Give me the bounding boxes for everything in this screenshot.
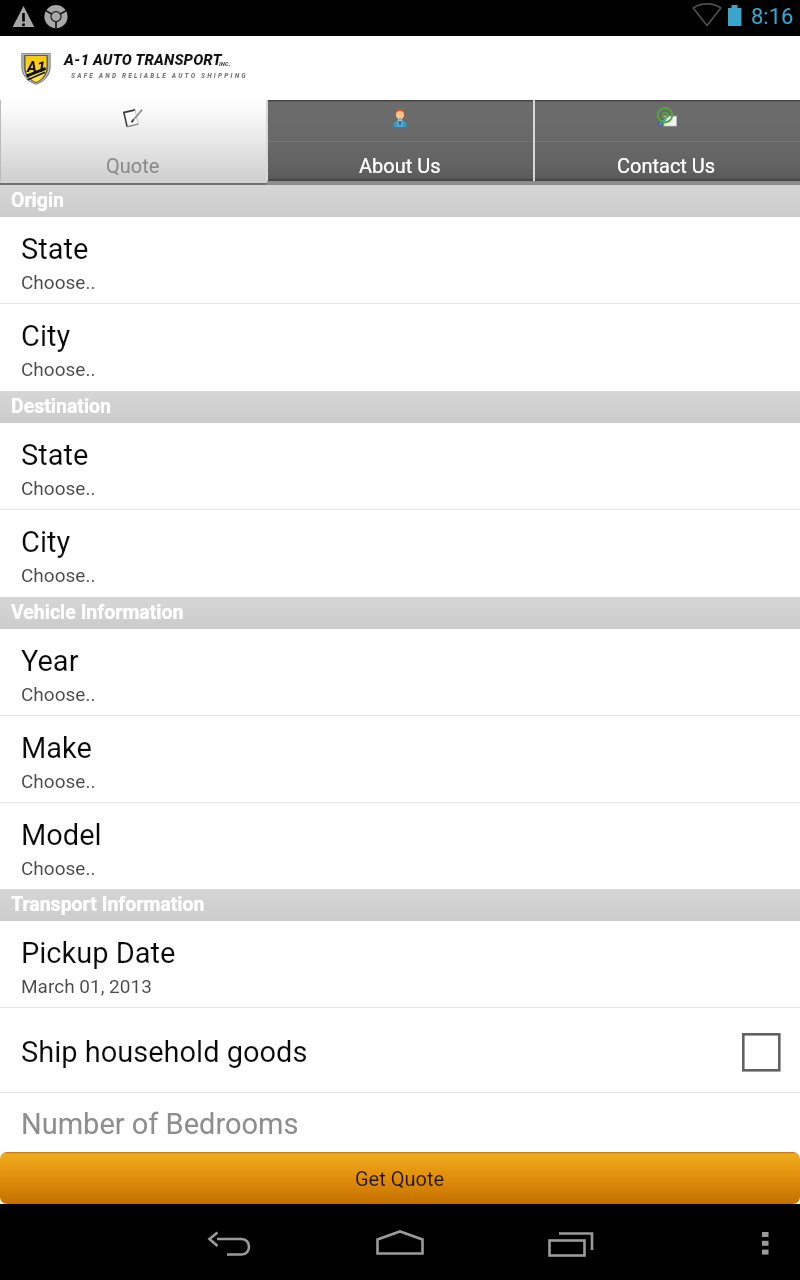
staticText: City xyxy=(21,525,71,559)
button[interactable]: Recent apps xyxy=(526,1204,618,1280)
button[interactable]: Year xyxy=(0,629,800,715)
staticText: Choose.. xyxy=(21,271,96,293)
staticText: Pickup Date xyxy=(21,936,176,970)
staticText: Quote xyxy=(106,154,160,177)
staticText: State xyxy=(21,438,89,472)
button[interactable]: Contact Us xyxy=(533,100,800,181)
staticText: SAFE AND RELIABLE AUTO SHIPPING xyxy=(71,72,248,80)
button[interactable]: City xyxy=(0,510,800,597)
button[interactable]: Number of Bedrooms xyxy=(0,1093,800,1152)
staticText: Year xyxy=(21,644,79,678)
button[interactable]: City xyxy=(0,304,800,391)
staticText: Transport Information xyxy=(11,893,205,916)
button[interactable]: Make xyxy=(0,716,800,802)
staticText: Choose.. xyxy=(21,683,96,705)
staticText: A1 xyxy=(27,58,46,76)
staticText: A-1 AUTO TRANSPORT xyxy=(64,51,222,69)
staticText: About Us xyxy=(359,154,441,177)
button[interactable]: State xyxy=(0,217,800,303)
staticText: Vehicle Information xyxy=(11,601,184,624)
staticText: Origin xyxy=(11,189,64,212)
staticText: 8:16 xyxy=(751,4,794,30)
staticText: Choose.. xyxy=(21,770,96,792)
button[interactable]: More options xyxy=(740,1204,790,1280)
button[interactable]: Get Quote xyxy=(0,1152,800,1204)
staticText: Number of Bedrooms xyxy=(21,1107,299,1141)
button[interactable]: Model xyxy=(0,803,800,889)
staticText: Choose.. xyxy=(21,477,96,499)
staticText: Model xyxy=(21,818,102,852)
staticText: Choose.. xyxy=(21,857,96,879)
staticText: Choose.. xyxy=(21,564,96,586)
button[interactable]: Quote xyxy=(0,100,266,181)
staticText: Choose.. xyxy=(21,358,96,380)
staticText: Get Quote xyxy=(355,1167,445,1190)
button[interactable]: Ship household goods xyxy=(0,1008,800,1092)
staticText: March 01, 2013 xyxy=(21,975,152,997)
staticText: Ship household goods xyxy=(21,1035,742,1069)
staticText: Make xyxy=(21,731,92,765)
staticText: State xyxy=(21,232,89,266)
staticText: INC. xyxy=(219,60,231,67)
button[interactable]: Back xyxy=(184,1204,276,1280)
staticText: Destination xyxy=(11,395,112,418)
button[interactable]: State xyxy=(0,423,800,509)
staticText: Contact Us xyxy=(617,154,716,177)
staticText: City xyxy=(21,319,71,353)
button[interactable]: About Us xyxy=(266,100,533,181)
button[interactable]: Pickup Date xyxy=(0,921,800,1007)
button[interactable]: Home xyxy=(354,1204,446,1280)
